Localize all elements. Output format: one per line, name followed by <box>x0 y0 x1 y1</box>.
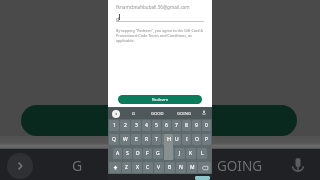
staticText: G <box>132 111 136 117</box>
staticText: Q <box>112 136 116 143</box>
staticText: By tapping "Redeem", you agree to the Gi… <box>116 28 206 43</box>
staticText: R <box>145 136 149 143</box>
staticText: Z <box>125 164 128 171</box>
button[interactable]: Expand suggestions <box>7 153 33 179</box>
button[interactable]: 1 <box>109 120 119 131</box>
button[interactable]: D <box>133 148 142 159</box>
button[interactable]: C <box>143 162 153 173</box>
staticText: 7 <box>175 122 178 129</box>
button[interactable]: Z <box>122 162 131 173</box>
button[interactable]: K <box>186 148 196 159</box>
staticText: GOING <box>177 111 191 117</box>
staticText: S <box>126 150 129 157</box>
staticText: GOING <box>217 157 263 175</box>
staticText: V <box>157 164 161 171</box>
button[interactable]: W <box>120 134 130 145</box>
button[interactable]: U <box>172 134 181 145</box>
button[interactable]: R <box>142 134 151 145</box>
staticText: M <box>190 164 195 171</box>
button[interactable]: I <box>182 134 191 145</box>
button[interactable]: 0 <box>202 120 211 131</box>
button[interactable]: X <box>132 162 142 173</box>
staticText: O <box>195 136 199 143</box>
button[interactable]: M <box>187 162 197 173</box>
staticText: X <box>136 164 139 171</box>
button[interactable]: 7 <box>172 120 181 131</box>
staticText: F <box>146 150 149 157</box>
button[interactable]: 3 <box>131 120 141 131</box>
staticText: D <box>136 150 140 157</box>
staticText: H <box>167 135 172 143</box>
staticText: G <box>156 150 160 157</box>
staticText: U <box>175 136 179 143</box>
button[interactable]: S <box>123 148 132 159</box>
button[interactable]: 8 <box>182 120 191 131</box>
staticText: 2 <box>124 122 127 129</box>
button[interactable]: L <box>197 148 207 159</box>
button[interactable]: E <box>131 134 141 145</box>
staticText: fknamcbnahbuball.56@gmail.com <box>116 4 190 10</box>
staticText: L <box>201 150 204 157</box>
staticText: 4 <box>145 122 148 129</box>
staticText: 5 <box>155 122 158 129</box>
staticText: 8 <box>185 122 188 129</box>
button[interactable]: Shift <box>109 162 121 173</box>
button[interactable]: B <box>165 162 175 173</box>
button[interactable]: 6 <box>162 120 171 131</box>
staticText: J <box>179 150 181 157</box>
button[interactable]: H <box>164 148 174 159</box>
button[interactable]: A <box>113 148 122 159</box>
staticText: Y <box>165 136 168 143</box>
button[interactable]: Enter <box>195 176 210 180</box>
staticText: I <box>186 136 188 143</box>
button[interactable]: Voice input <box>200 109 208 117</box>
button[interactable]: P <box>202 134 211 145</box>
button[interactable]: Y <box>162 134 171 145</box>
button[interactable]: 5 <box>152 120 161 131</box>
staticText: 3 <box>135 122 138 129</box>
button[interactable]: 2 <box>120 120 130 131</box>
staticText: d <box>116 15 120 23</box>
button[interactable]: 9 <box>192 120 201 131</box>
button[interactable]: Redeem <box>118 95 202 104</box>
button[interactable]: N <box>176 162 186 173</box>
staticText: A <box>116 150 120 157</box>
staticText: 6 <box>165 122 168 129</box>
button[interactable]: Q <box>109 134 119 145</box>
button[interactable]: O <box>192 134 201 145</box>
button[interactable]: Expand suggestions <box>112 110 120 118</box>
staticText: N <box>179 164 183 171</box>
staticText: E <box>135 136 138 143</box>
button[interactable]: T <box>152 134 161 145</box>
button[interactable]: V <box>154 162 164 173</box>
staticText: B <box>168 164 172 171</box>
staticText: 9 <box>195 122 198 129</box>
staticText: C <box>146 164 150 171</box>
staticText: T <box>155 136 158 143</box>
staticText: 1 <box>113 122 116 129</box>
button[interactable]: G <box>153 148 163 159</box>
staticText: K <box>189 150 193 157</box>
button[interactable]: 4 <box>142 120 151 131</box>
staticText: G <box>72 156 83 175</box>
button[interactable]: F <box>143 148 152 159</box>
staticText: W <box>123 136 128 143</box>
button[interactable]: Backspace <box>198 162 211 173</box>
button[interactable]: J <box>175 148 185 159</box>
staticText: GOOD <box>151 111 164 117</box>
button[interactable]: Voice input <box>288 156 308 176</box>
staticText: Redeem <box>152 97 169 103</box>
staticText: P <box>205 136 209 143</box>
staticText: 0 <box>205 122 208 129</box>
